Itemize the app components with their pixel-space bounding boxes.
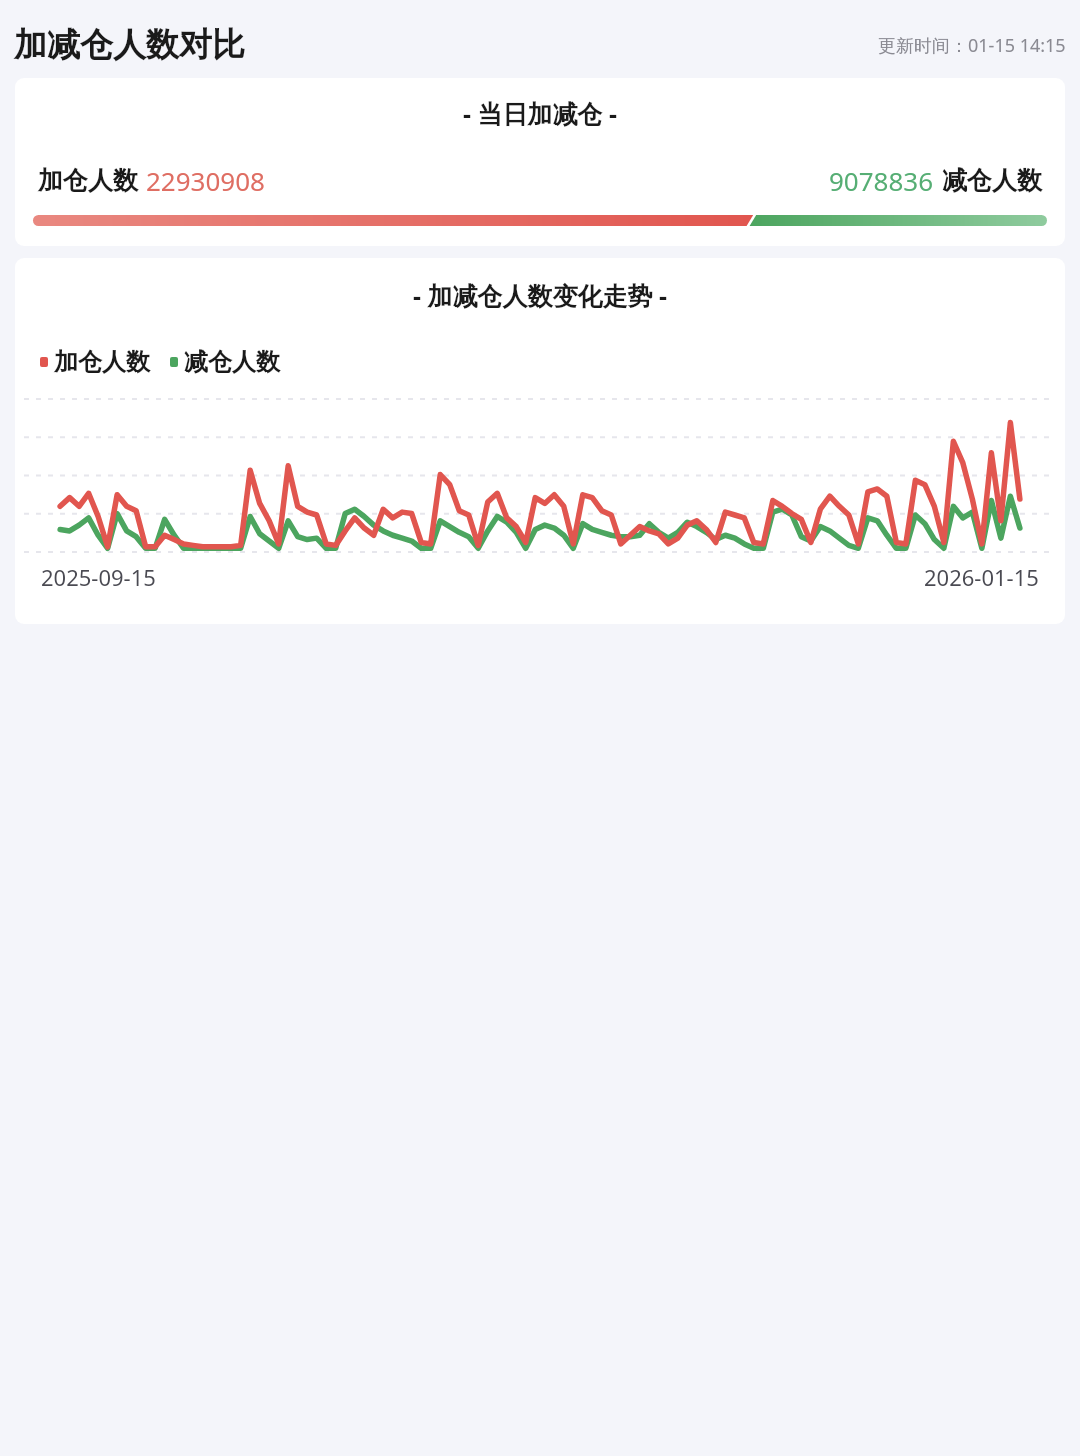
staticText: 加仓人数 [54, 347, 150, 377]
staticText: 减仓人数 [942, 165, 1042, 196]
staticText: - 当日加减仓 - [15, 96, 1065, 130]
staticText: 更新时间：01-15 14:15 [878, 33, 1066, 58]
staticText: 加减仓人数对比 [14, 24, 245, 66]
staticText: 2026-01-15 [924, 562, 1039, 592]
staticText: 2025-09-15 [41, 562, 156, 592]
staticText: 9078836 [829, 163, 934, 198]
staticText: 22930908 [146, 163, 265, 198]
staticText: 加仓人数 [38, 165, 138, 196]
staticText: - 加减仓人数变化走势 - [15, 278, 1065, 312]
button[interactable]: - 当日加减仓 - [15, 78, 1065, 246]
button[interactable]: 减仓人数 [170, 347, 280, 377]
staticText: 减仓人数 [184, 347, 280, 377]
button[interactable]: - 加减仓人数变化走势 - [15, 258, 1065, 624]
button[interactable]: 加仓人数 [40, 347, 150, 377]
